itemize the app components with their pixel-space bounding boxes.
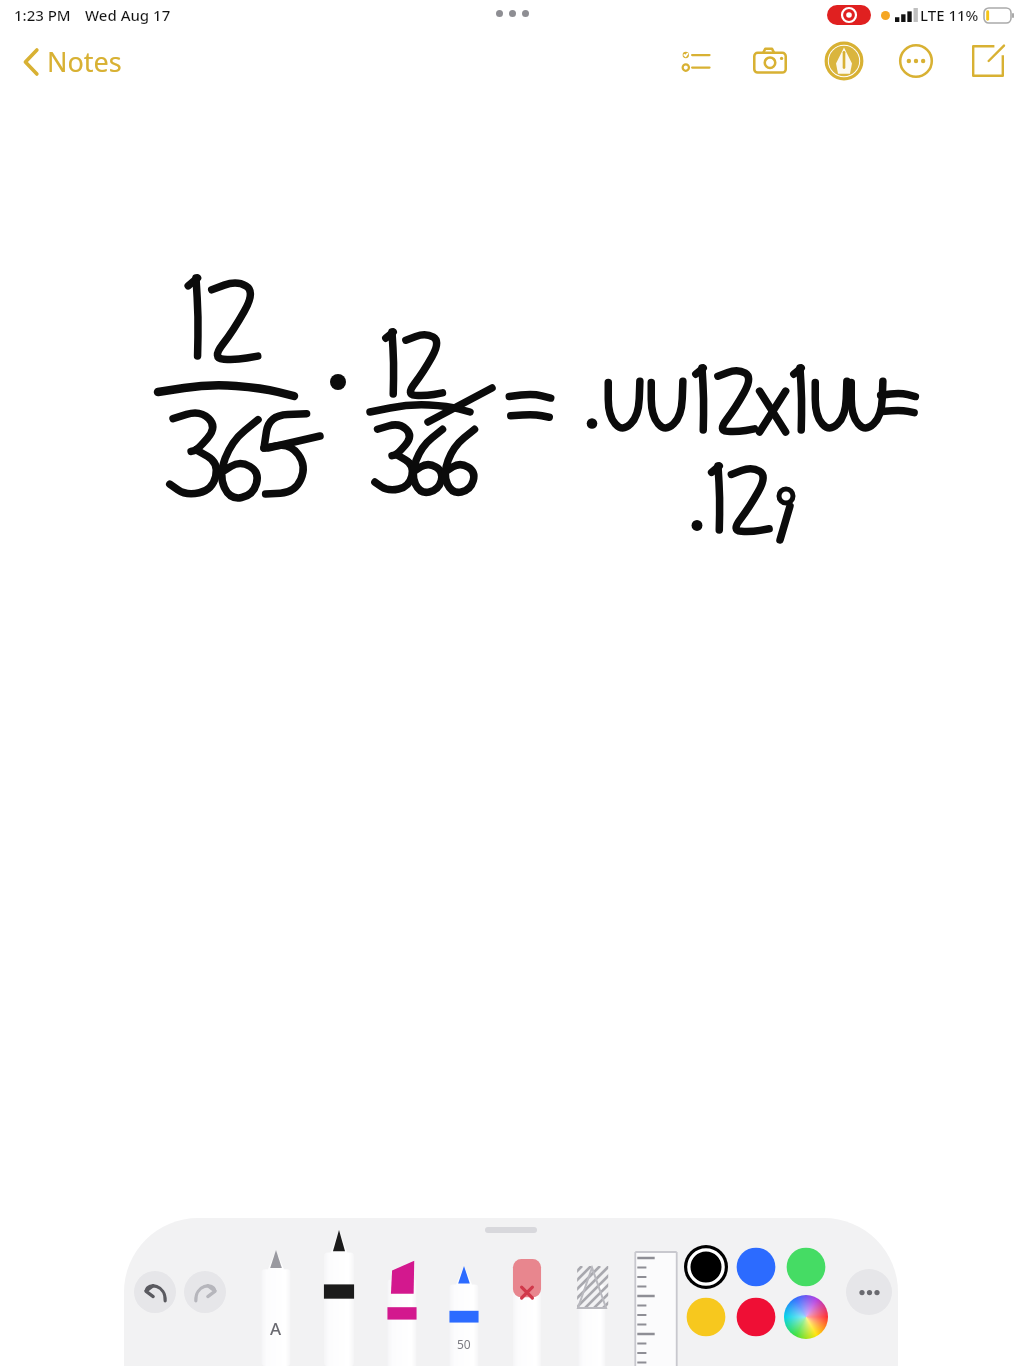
button[interactable]: Checklist bbox=[668, 33, 724, 89]
button[interactable]: Pen bbox=[310, 1218, 368, 1366]
staticText: A bbox=[270, 1317, 282, 1340]
button[interactable]: Pencil bbox=[248, 1218, 304, 1366]
button[interactable]: Notes bbox=[18, 37, 128, 86]
staticText: 50 bbox=[457, 1336, 471, 1352]
button[interactable]: Redo bbox=[184, 1271, 226, 1313]
button[interactable]: Custom colour bbox=[784, 1295, 828, 1339]
button[interactable]: New note bbox=[960, 33, 1016, 89]
button[interactable]: Markup bbox=[816, 33, 872, 89]
button[interactable]: Highlighter bbox=[374, 1218, 430, 1366]
button[interactable]: More options bbox=[888, 33, 944, 89]
staticText: LTE 11% bbox=[920, 5, 979, 25]
button[interactable]: Ruler bbox=[628, 1218, 684, 1366]
button[interactable]: Undo bbox=[134, 1271, 176, 1313]
button[interactable]: Blue pen bbox=[436, 1218, 492, 1366]
button[interactable]: More markup options bbox=[846, 1269, 892, 1315]
button[interactable]: Lasso select bbox=[566, 1218, 618, 1366]
button[interactable]: Eraser bbox=[500, 1218, 554, 1366]
button[interactable]: Camera bbox=[742, 33, 798, 89]
button[interactable]: Yellow bbox=[684, 1295, 728, 1339]
staticText: 1:23 PM bbox=[14, 5, 71, 25]
button[interactable]: Red bbox=[734, 1295, 778, 1339]
button[interactable]: Blue bbox=[734, 1245, 778, 1289]
button[interactable]: Black, selected bbox=[684, 1245, 728, 1289]
staticText: Wed Aug 17 bbox=[85, 5, 171, 25]
button[interactable]: Green bbox=[784, 1245, 828, 1289]
button[interactable]: Multitasking controls bbox=[486, 4, 539, 23]
staticText: Notes bbox=[47, 43, 122, 80]
